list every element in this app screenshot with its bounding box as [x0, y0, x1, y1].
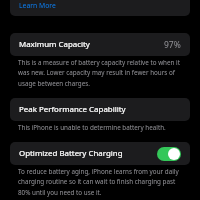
staticText: Learn More	[19, 1, 56, 10]
button[interactable]: Peak Performance Capability	[10, 98, 190, 121]
button[interactable]: Maximum Capacity	[10, 33, 190, 56]
staticText: 97%	[164, 39, 181, 51]
staticText: Optimized Battery Charging	[19, 148, 123, 159]
staticText: Peak Performance Capability	[19, 104, 126, 115]
button[interactable]: Optimized Battery Charging, on	[157, 147, 181, 161]
staticText: Maximum Capacity	[19, 39, 90, 50]
staticText: This is a measure of battery capacity re…	[18, 58, 185, 88]
staticText: This iPhone is unable to determine batte…	[18, 123, 166, 132]
staticText: To reduce battery aging, iPhone learns f…	[18, 167, 185, 197]
button[interactable]: Optimized Battery Charging	[10, 142, 190, 165]
button[interactable]: Learn More	[19, 1, 56, 10]
